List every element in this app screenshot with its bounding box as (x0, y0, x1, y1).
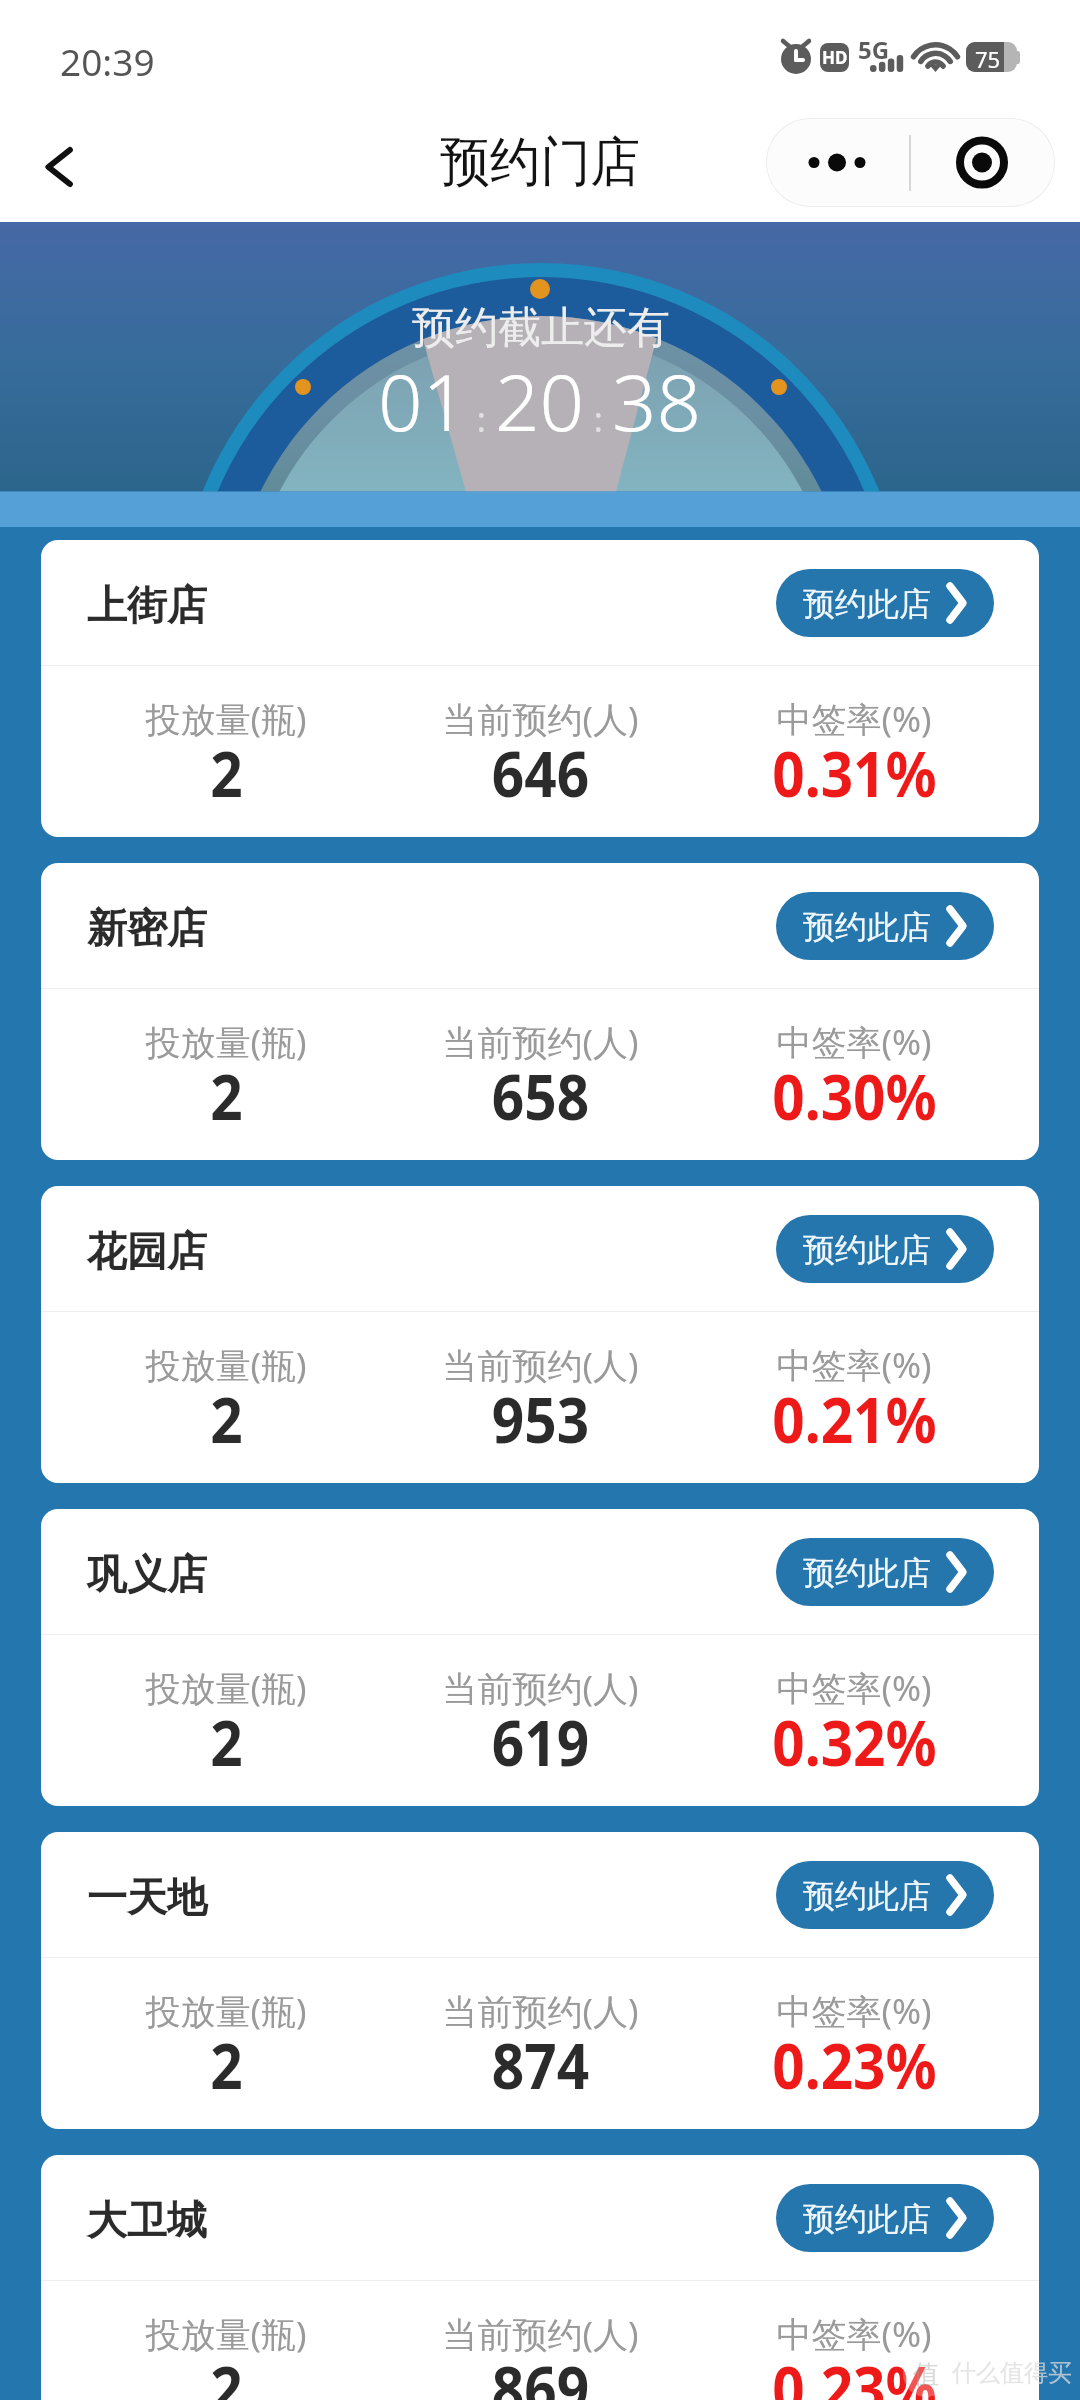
staticText: 2 (210, 1053, 243, 1139)
staticText: 658 (491, 1053, 590, 1139)
staticText: 什么值得买 (952, 2358, 1072, 2388)
staticText: 巩义店 (87, 1549, 207, 1599)
staticText: : (468, 396, 495, 442)
staticText: 619 (491, 1699, 590, 1785)
staticText: 0.31% (772, 730, 937, 816)
staticText: 75 (975, 44, 1001, 74)
staticText: 0.23% (772, 2345, 937, 2400)
staticText: 2 (210, 2345, 243, 2400)
staticText: 01 (378, 348, 468, 454)
staticText: 2 (210, 2022, 243, 2108)
staticText: 中签率(%) (776, 2310, 932, 2358)
staticText: 投放量(瓶) (145, 1664, 307, 1712)
staticText: 当前预约(人) (442, 2310, 639, 2358)
staticText: 0.30% (772, 1053, 937, 1139)
staticText: 值 (913, 2358, 939, 2391)
staticText: 投放量(瓶) (145, 1341, 307, 1389)
staticText: 953 (491, 1376, 590, 1462)
staticText: 投放量(瓶) (145, 1987, 307, 2035)
button[interactable]: 巩义店 (41, 1509, 1039, 1806)
staticText: : (585, 396, 612, 442)
staticText: 新密店 (87, 903, 207, 953)
staticText: 投放量(瓶) (145, 1018, 307, 1066)
button[interactable]: 预约此店 (776, 569, 994, 637)
staticText: 中签率(%) (776, 1987, 932, 2035)
staticText: 2 (210, 1376, 243, 1462)
staticText: 0.21% (772, 1376, 937, 1462)
staticText: 当前预约(人) (442, 1018, 639, 1066)
button[interactable]: 一天地 (41, 1832, 1039, 2129)
staticText: 一天地 (87, 1872, 207, 1922)
staticText: 预约此店 (803, 2199, 931, 2239)
staticText: 中签率(%) (776, 1341, 932, 1389)
staticText: 预约此店 (803, 584, 931, 624)
staticText: 投放量(瓶) (145, 695, 307, 743)
staticText: 20 (495, 348, 585, 454)
staticText: 874 (491, 2022, 590, 2108)
button[interactable]: Close mini program (910, 118, 1055, 207)
staticText: 预约截止还有 (412, 301, 670, 355)
staticText: 869 (491, 2345, 590, 2400)
staticText: 预约门店 (440, 129, 640, 196)
staticText: 中签率(%) (776, 695, 932, 743)
staticText: 预约此店 (803, 1553, 931, 1593)
staticText: 预约此店 (803, 1876, 931, 1916)
staticText: 花园店 (87, 1226, 207, 1276)
staticText: HD (822, 46, 848, 69)
staticText: 预约此店 (803, 1230, 931, 1270)
staticText: 大卫城 (87, 2195, 207, 2245)
staticText: 0.23% (772, 2022, 937, 2108)
staticText: 646 (491, 730, 590, 816)
staticText: 中签率(%) (776, 1018, 932, 1066)
button[interactable]: 预约此店 (776, 2184, 994, 2252)
button[interactable]: Back (24, 130, 98, 204)
button[interactable]: 预约此店 (776, 1215, 994, 1283)
staticText: 上街店 (87, 580, 207, 630)
button[interactable]: 大卫城 (41, 2155, 1039, 2400)
button[interactable]: 上街店 (41, 540, 1039, 837)
button[interactable]: 预约此店 (776, 1538, 994, 1606)
staticText: 中签率(%) (776, 1664, 932, 1712)
staticText: 38 (612, 348, 702, 454)
staticText: 投放量(瓶) (145, 2310, 307, 2358)
button[interactable]: More (766, 118, 910, 207)
staticText: 当前预约(人) (442, 1341, 639, 1389)
button[interactable]: 预约此店 (776, 892, 994, 960)
button[interactable]: 花园店 (41, 1186, 1039, 1483)
button[interactable]: 预约此店 (776, 1861, 994, 1929)
staticText: 预约此店 (803, 907, 931, 947)
button[interactable]: 新密店 (41, 863, 1039, 1160)
staticText: 2 (210, 730, 243, 816)
staticText: 当前预约(人) (442, 1664, 639, 1712)
staticText: 20:39 (60, 36, 155, 86)
staticText: 当前预约(人) (442, 695, 639, 743)
staticText: 当前预约(人) (442, 1987, 639, 2035)
staticText: 2 (210, 1699, 243, 1785)
staticText: 0.32% (772, 1699, 937, 1785)
staticText: 5G (858, 33, 890, 66)
